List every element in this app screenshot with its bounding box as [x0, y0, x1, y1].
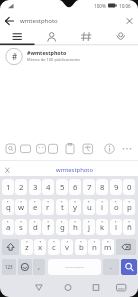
button[interactable]: .	[103, 259, 119, 275]
button[interactable]: t	[56, 199, 68, 215]
button[interactable]	[103, 30, 138, 46]
staticText: 8	[100, 182, 105, 193]
button[interactable]: n	[88, 239, 100, 255]
staticText: z	[25, 242, 29, 253]
button[interactable]: Microsoft SwiftKey	[48, 259, 101, 275]
button[interactable]: w	[15, 199, 27, 215]
staticText: s	[19, 222, 23, 233]
staticText: c	[52, 242, 56, 253]
button[interactable]	[68, 30, 103, 46]
staticText: x	[38, 242, 43, 253]
staticText: 0	[127, 182, 132, 193]
staticText: 123	[5, 264, 13, 270]
staticText: 7	[87, 182, 92, 193]
staticText: g	[60, 222, 65, 233]
staticText: j	[88, 222, 91, 233]
button[interactable]: a	[2, 219, 14, 235]
button[interactable]: 2	[15, 179, 27, 195]
button[interactable]: v	[61, 239, 73, 255]
staticText: v	[65, 242, 69, 253]
button[interactable]	[2, 239, 19, 255]
button[interactable]: 9	[110, 179, 122, 195]
staticText: 2	[19, 182, 24, 193]
staticText: 10:06	[119, 3, 131, 9]
button[interactable]: wmtestphoto	[0, 161, 138, 176]
staticText: w	[18, 202, 25, 213]
button[interactable]: p	[123, 199, 135, 215]
staticText: a	[6, 222, 11, 233]
staticText: 6	[73, 182, 78, 193]
staticText: 4	[46, 182, 51, 193]
staticText: u	[87, 202, 92, 213]
button[interactable]: 0	[123, 179, 135, 195]
staticText: y	[73, 202, 77, 213]
staticText: Menos de 100 publicaciones	[27, 57, 81, 62]
button[interactable]: 1	[2, 179, 14, 195]
staticText: f	[47, 222, 50, 233]
staticText: t	[61, 202, 64, 213]
staticText: .	[110, 262, 112, 272]
button[interactable]: l	[110, 219, 122, 235]
button[interactable]: y	[69, 199, 81, 215]
button[interactable]: k	[96, 219, 108, 235]
button[interactable]: i	[96, 199, 108, 215]
button[interactable]: #	[0, 46, 138, 67]
button[interactable]: 5	[56, 179, 68, 195]
staticText: d	[33, 222, 38, 233]
button[interactable]	[116, 239, 136, 255]
button[interactable]	[18, 259, 32, 275]
button[interactable]: z	[21, 239, 33, 255]
staticText: e	[33, 202, 38, 213]
button[interactable]: 4	[42, 179, 54, 195]
staticText: o	[114, 202, 119, 213]
staticText: Microsoft SwiftKey	[65, 266, 84, 269]
button[interactable]: ,	[33, 259, 45, 275]
button[interactable]: 123	[2, 259, 16, 275]
button[interactable]	[0, 30, 34, 46]
staticText: wmtestphoto	[56, 166, 94, 174]
button[interactable]: j	[83, 219, 95, 235]
button[interactable]: h	[69, 219, 81, 235]
button[interactable]: q	[2, 199, 14, 215]
staticText: #wmtestphoto	[27, 49, 67, 56]
staticText: ñ	[127, 222, 132, 233]
button[interactable]: ñ	[123, 219, 135, 235]
button[interactable]: s	[15, 219, 27, 235]
staticText: wmtestphoto	[20, 17, 58, 25]
button[interactable]: f	[42, 219, 54, 235]
staticText: 5	[60, 182, 65, 193]
button[interactable]: c	[48, 239, 60, 255]
button[interactable]: r	[42, 199, 54, 215]
button[interactable]: e	[29, 199, 41, 215]
button[interactable]	[34, 30, 68, 46]
staticText: 9	[114, 182, 119, 193]
staticText: p	[127, 202, 132, 213]
staticText: 1	[6, 182, 11, 193]
staticText: b	[79, 242, 84, 253]
button[interactable]: 8	[96, 179, 108, 195]
staticText: h	[73, 222, 78, 233]
button[interactable]: d	[29, 219, 41, 235]
staticText: #	[12, 51, 18, 62]
staticText: q	[6, 202, 11, 213]
staticText: i	[101, 202, 104, 213]
button[interactable]: g	[56, 219, 68, 235]
staticText: l	[115, 222, 118, 233]
staticText: m	[104, 242, 112, 253]
staticText: 3	[33, 182, 38, 193]
button[interactable]: 3	[29, 179, 41, 195]
button[interactable]: 7	[83, 179, 95, 195]
button[interactable]: x	[34, 239, 46, 255]
button[interactable]: u	[83, 199, 95, 215]
staticText: r	[46, 202, 50, 213]
staticText: 100%	[94, 3, 106, 9]
button[interactable]: m	[102, 239, 114, 255]
button[interactable]: wmtestphoto	[0, 12, 138, 30]
staticText: ,	[38, 262, 40, 272]
button[interactable]: o	[110, 199, 122, 215]
staticText: n	[92, 242, 97, 253]
button[interactable]: 6	[69, 179, 81, 195]
staticText: k	[100, 222, 105, 233]
button[interactable]: b	[75, 239, 87, 255]
button[interactable]	[121, 259, 137, 275]
